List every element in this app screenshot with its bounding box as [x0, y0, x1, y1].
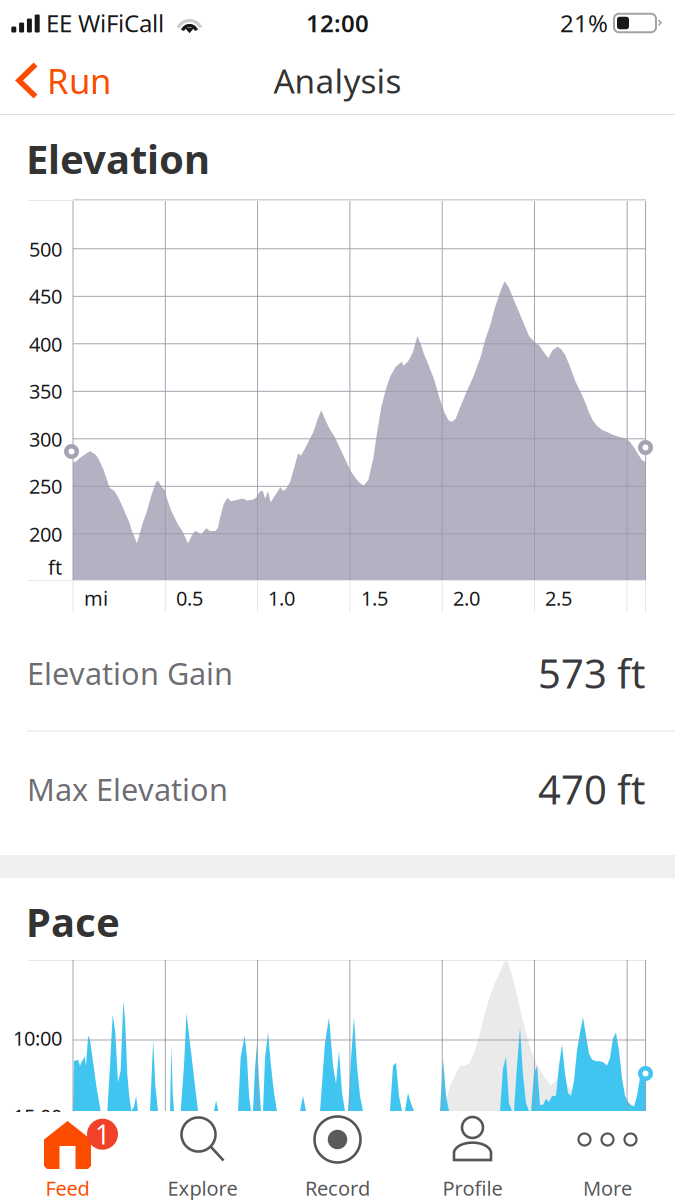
staticText: Run	[47, 57, 111, 103]
staticText: 500	[29, 236, 62, 262]
staticText: 470 ft	[538, 762, 645, 815]
staticText: 300	[29, 426, 62, 452]
staticText: Elevation	[26, 132, 210, 185]
staticText: 400	[29, 331, 62, 357]
staticText: 2.5	[545, 585, 572, 611]
staticText: Feed	[45, 1175, 89, 1200]
staticText: 450	[29, 283, 62, 309]
staticText: Explore	[167, 1175, 237, 1200]
staticText: 10:00	[13, 1025, 62, 1051]
staticText: 573 ft	[538, 646, 645, 699]
button[interactable]: Record	[270, 1112, 405, 1200]
staticText: mi	[84, 585, 108, 611]
staticText: 2.0	[453, 585, 480, 611]
staticText: 350	[29, 378, 62, 404]
staticText: Pace	[26, 895, 120, 948]
button[interactable]: More	[540, 1112, 675, 1200]
staticText: 1.5	[361, 585, 388, 611]
staticText: 1.0	[268, 585, 295, 611]
button[interactable]: Explore	[135, 1112, 270, 1200]
button[interactable]: Profile	[405, 1112, 540, 1200]
staticText: Profile	[442, 1175, 502, 1200]
staticText: More	[583, 1175, 632, 1200]
staticText: 21%	[560, 7, 614, 39]
staticText: 1	[95, 1116, 110, 1152]
button[interactable]: Run	[0, 46, 131, 115]
staticText: 250	[29, 473, 62, 499]
staticText: 15:00	[13, 1103, 62, 1129]
staticText: ft	[48, 554, 62, 580]
staticText: Max Elevation	[27, 769, 228, 809]
staticText: 200	[29, 521, 62, 547]
staticText: EE WiFiCall	[40, 7, 176, 39]
staticText: Analysis	[273, 58, 401, 103]
staticText: Elevation Gain	[27, 653, 233, 693]
button[interactable]: 1	[0, 1112, 135, 1200]
staticText: 0.5	[176, 585, 203, 611]
staticText: 12:00	[306, 7, 369, 39]
staticText: Record	[305, 1175, 370, 1200]
